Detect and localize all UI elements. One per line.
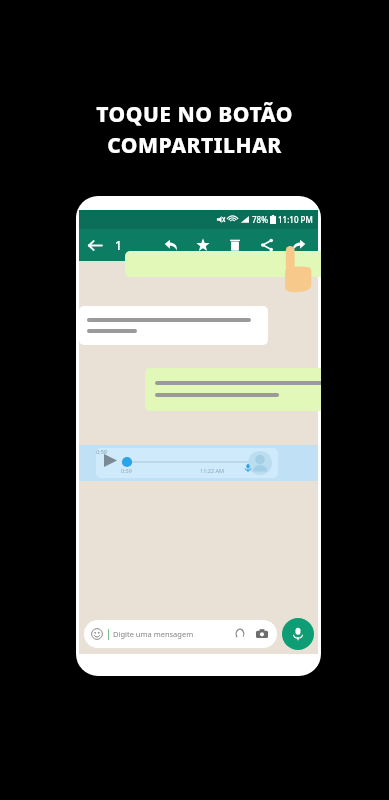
button[interactable]: Camera [254,626,270,642]
staticText: 1 [115,237,122,253]
button[interactable]: Back [79,230,109,260]
staticText: 11:22 AM [200,467,224,474]
staticText: TOQUE NO BOTÃO [96,100,293,129]
button[interactable] [125,251,321,277]
button[interactable]: Reply [160,234,182,256]
button[interactable] [145,368,321,411]
button[interactable]: Attach [232,626,248,642]
button[interactable]: Star [192,234,214,256]
button[interactable]: Forward [288,234,310,256]
button[interactable]: Digite uma mensagem [84,620,277,648]
staticText: COMPARTILHAR [107,131,282,160]
button[interactable] [79,306,268,345]
button[interactable]: Delete [224,234,246,256]
button[interactable]: Record voice message [282,618,314,650]
staticText: 11:10 PM [278,214,313,225]
button[interactable]: 0:59 [79,445,318,481]
staticText: Digite uma mensagem [113,629,194,639]
staticText: 0:59 [121,467,132,474]
staticText: 0:59 [96,448,107,455]
staticText: 78% [252,214,268,225]
button[interactable]: Share [256,234,278,256]
